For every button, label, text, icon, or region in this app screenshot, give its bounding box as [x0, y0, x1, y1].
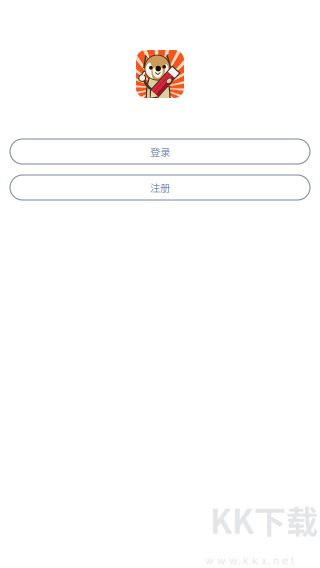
button[interactable]: 注册	[10, 175, 310, 200]
staticText: w w w. k k x. n e t	[205, 554, 294, 567]
staticText: 登录	[150, 144, 170, 159]
staticText: KK下载	[210, 497, 318, 543]
button[interactable]: 登录	[10, 139, 310, 164]
staticText: 注册	[150, 180, 170, 195]
